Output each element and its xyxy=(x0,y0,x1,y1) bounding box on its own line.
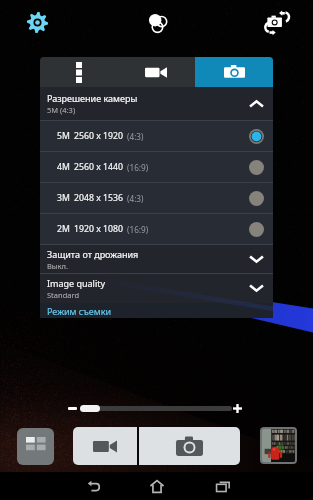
button[interactable]: Recents xyxy=(202,472,244,500)
button[interactable]: 3M xyxy=(40,183,273,213)
staticText: 2560 x 1440 xyxy=(74,161,123,173)
button[interactable]: More options xyxy=(40,57,117,87)
staticText: Image quality xyxy=(47,277,106,289)
staticText: Выкл. xyxy=(47,261,68,271)
button[interactable]: 2M xyxy=(40,214,273,244)
button[interactable]: Camera settings xyxy=(195,57,273,87)
button[interactable]: Разрешение камеры xyxy=(40,87,273,120)
button[interactable]: Режим съемки xyxy=(40,303,273,318)
button[interactable]: 4M xyxy=(40,152,273,182)
staticText: 1920 x 1080 xyxy=(74,223,123,235)
button[interactable]: Gallery xyxy=(262,429,295,462)
button[interactable]: Video settings xyxy=(117,57,195,87)
button[interactable]: Settings xyxy=(26,11,49,34)
staticText: (4:3) xyxy=(127,193,144,204)
button[interactable]: Record video xyxy=(73,427,137,465)
staticText: Standard xyxy=(47,290,80,300)
button[interactable]: Take photo xyxy=(139,427,240,465)
staticText: (4:3) xyxy=(127,131,144,142)
staticText: 2M xyxy=(57,223,70,235)
staticText: 2560 x 1920 xyxy=(74,130,123,142)
staticText: Режим съемки xyxy=(47,305,112,317)
button[interactable]: Back xyxy=(72,472,114,500)
staticText: 3M xyxy=(57,192,70,204)
staticText: (16:9) xyxy=(127,162,149,173)
button[interactable]: Zoom xyxy=(66,402,246,415)
staticText: 5M (4:3) xyxy=(47,105,76,115)
staticText: 4M xyxy=(57,161,70,173)
button[interactable]: Switch camera xyxy=(264,9,290,35)
button[interactable]: Image quality xyxy=(40,274,273,303)
staticText: (16:9) xyxy=(127,224,149,235)
staticText: Защита от дрожания xyxy=(47,248,139,260)
button[interactable]: Home xyxy=(136,472,178,500)
staticText: Разрешение камеры xyxy=(47,92,138,104)
staticText: 5M xyxy=(57,130,70,142)
button[interactable]: Modes xyxy=(17,428,54,465)
button[interactable]: Effects xyxy=(146,11,169,34)
staticText: 2048 x 1536 xyxy=(74,192,123,204)
button[interactable]: 5M xyxy=(40,121,273,151)
button[interactable]: Защита от дрожания xyxy=(40,245,273,273)
